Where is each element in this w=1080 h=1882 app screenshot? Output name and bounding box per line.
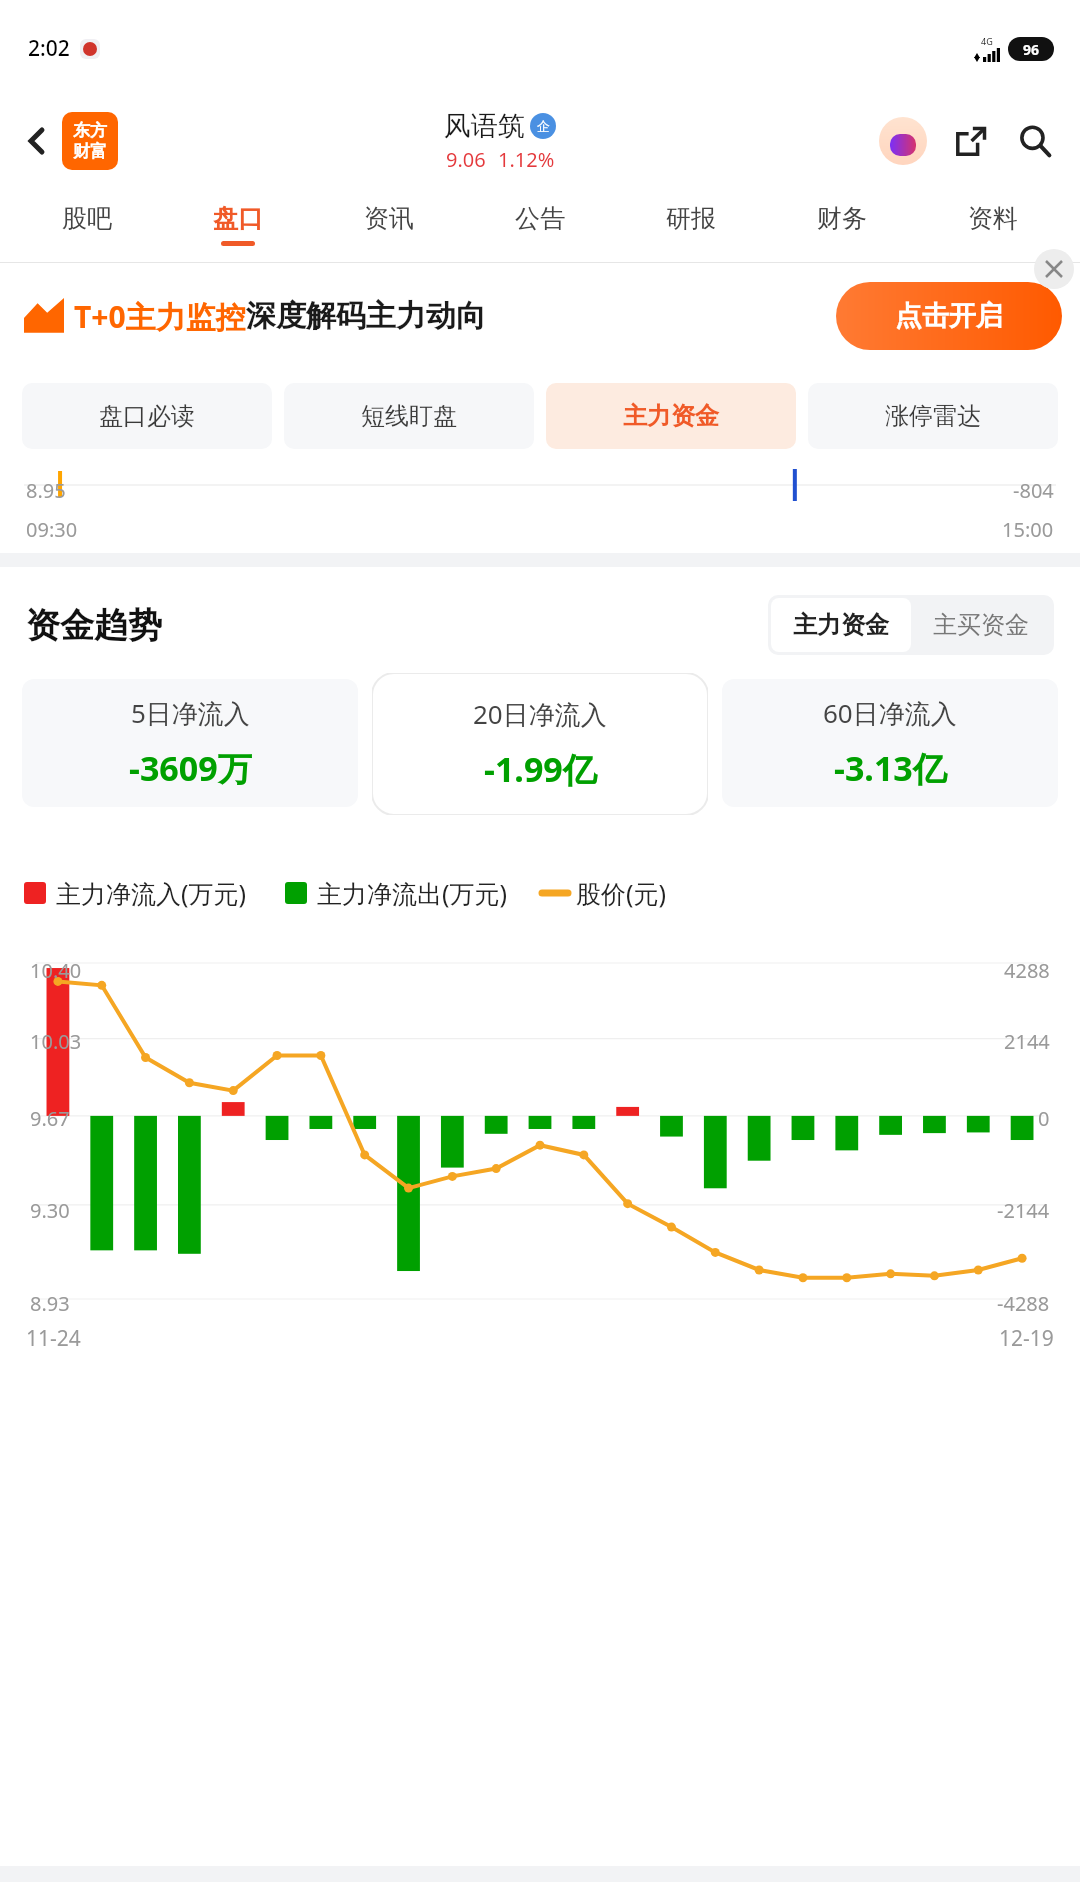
staticText: -3609万 [129,745,252,791]
staticText: 8.95 [26,477,66,504]
button[interactable]: 短线盯盘 [284,383,534,449]
staticText: 盘口必读 [99,401,195,431]
staticText: 9.67 [30,1105,70,1132]
staticText: 主买资金 [933,610,1029,640]
button[interactable]: 点击开启 [836,282,1062,350]
staticText: 9.06 [446,146,486,173]
staticText: 资料 [968,203,1018,234]
staticText: 4G [981,35,993,47]
staticText: 0 [1038,1105,1050,1132]
button[interactable]: 财务 [766,186,917,262]
button[interactable]: 20日净流入 [372,673,708,815]
staticText: 资金趋势 [26,604,162,647]
button[interactable]: 5日净流入 [22,679,358,807]
staticText: 10.40 [30,957,82,984]
button[interactable]: 主力资金 [546,383,796,449]
button[interactable]: 股吧 [12,186,162,262]
staticText: 主力净流出(万元) [317,876,508,910]
staticText: 10.03 [30,1028,82,1055]
staticText: 主力净流入(万元) [56,876,247,910]
staticText: 4288 [1004,957,1050,984]
staticText: 盘口 [213,203,263,234]
staticText: -1.99亿 [484,746,597,792]
staticText: -3.13亿 [834,745,947,791]
staticText: 96 [1023,40,1040,59]
button[interactable]: Search [1008,114,1062,168]
button[interactable]: 资料 [917,186,1068,262]
button[interactable]: 盘口必读 [22,383,272,449]
staticText: 股价(元) [576,876,667,910]
staticText: 公告 [515,203,565,234]
staticText: 深度解码主力动向 [246,297,486,335]
staticText: 5日净流入 [131,695,250,731]
button[interactable]: Assistant [876,114,930,168]
staticText: 主力资金 [793,610,889,640]
button[interactable]: 公告 [464,186,615,262]
button[interactable]: 资讯 [313,186,464,262]
staticText: 资讯 [364,203,414,234]
staticText: 15:00 [1002,516,1054,543]
staticText: 60日净流入 [823,695,957,731]
button[interactable]: 主力资金 [793,610,889,640]
staticText: 财富 [73,141,107,162]
staticText: 点击开启 [895,299,1003,333]
button[interactable]: Back [16,119,60,163]
staticText: -4288 [997,1290,1050,1317]
button[interactable]: 东方财富 [62,112,118,170]
staticText: 主力资金 [623,401,719,431]
staticText: 风语筑 [444,109,525,143]
button[interactable]: Share [944,114,998,168]
staticText: 1.12% [498,146,555,173]
staticText: T+0主力监控 [74,296,246,337]
button[interactable]: 研报 [615,186,766,262]
button[interactable]: 盘口 [162,186,313,262]
button[interactable]: 60日净流入 [722,679,1058,807]
button[interactable]: 主买资金 [933,610,1029,640]
button[interactable]: 涨停雷达 [808,383,1058,449]
staticText: 20日净流入 [473,696,607,732]
staticText: 财务 [817,203,867,234]
staticText: 股吧 [62,203,112,234]
staticText: 短线盯盘 [361,401,457,431]
staticText: -804 [1013,477,1054,504]
staticText: 2:02 [28,34,70,63]
staticText: 研报 [666,203,716,234]
staticText: 企 [537,118,550,134]
button[interactable]: Close [1034,249,1074,289]
staticText: 东方 [73,120,107,141]
staticText: 2144 [1004,1028,1050,1055]
staticText: 09:30 [26,516,78,543]
other: Back [16,119,60,163]
staticText: 12-19 [999,1324,1054,1353]
staticText: 11-24 [26,1324,81,1353]
staticText: 涨停雷达 [885,401,981,431]
staticText: -2144 [997,1197,1050,1224]
staticText: 9.30 [30,1197,70,1224]
staticText: 8.93 [30,1290,70,1317]
